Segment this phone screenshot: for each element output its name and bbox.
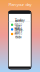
staticText: Team standup: [15, 24, 23, 34]
staticText: 9:30 AM: [16, 28, 23, 35]
staticText: Morning run: [15, 19, 24, 30]
staticText: 2:00 PM: [16, 32, 23, 39]
staticText: Today: [15, 17, 25, 22]
staticText: Design review: [15, 28, 24, 39]
staticText: 7:00 AM: [16, 23, 23, 30]
staticText: Plan your day: [8, 2, 31, 7]
